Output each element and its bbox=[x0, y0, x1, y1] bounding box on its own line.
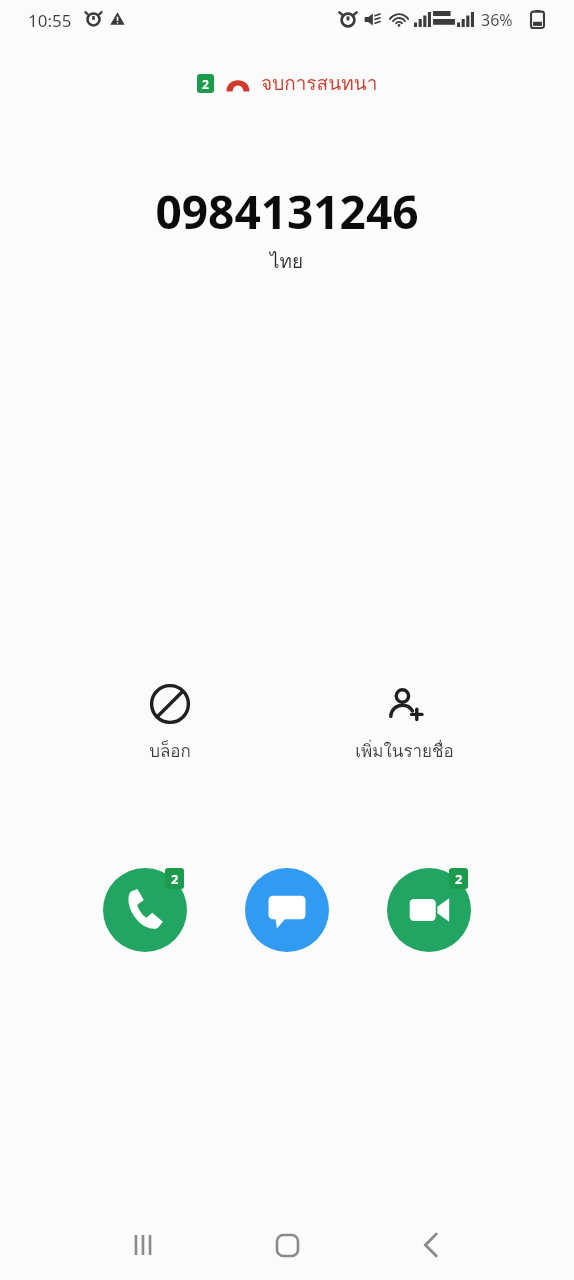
staticText: 36% bbox=[481, 9, 513, 31]
staticText: บล็อก bbox=[149, 737, 191, 764]
staticText: เพิ่มในรายชื่อ bbox=[355, 737, 454, 764]
button[interactable]: Back bbox=[376, 1210, 486, 1280]
staticText: 0984131246 bbox=[155, 180, 419, 243]
button[interactable]: Message bbox=[245, 868, 329, 952]
staticText: 2 bbox=[202, 76, 209, 92]
staticText: 2 bbox=[171, 870, 179, 888]
button[interactable]: Block bbox=[105, 680, 235, 768]
staticText: ไทย bbox=[270, 246, 304, 276]
button[interactable]: Add to contacts bbox=[339, 680, 469, 768]
button[interactable]: Call bbox=[103, 868, 187, 952]
staticText: 10:55 bbox=[28, 9, 72, 32]
staticText: จบการสนทนา bbox=[261, 68, 378, 98]
staticText: 2 bbox=[455, 870, 463, 888]
button[interactable]: Recents bbox=[88, 1210, 198, 1280]
button[interactable]: Video call bbox=[387, 868, 471, 952]
button[interactable]: Home bbox=[232, 1210, 342, 1280]
